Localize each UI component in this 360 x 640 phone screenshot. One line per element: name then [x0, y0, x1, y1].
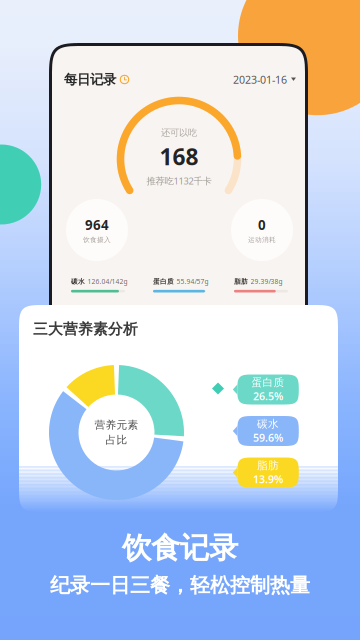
staticText: 碳水 [71, 277, 85, 285]
staticText: 59.6% [253, 430, 283, 445]
staticText: 纪录一日三餐，轻松控制热量 [50, 573, 310, 598]
staticText: 蛋白质 [153, 277, 174, 285]
staticText: 脂肪 [257, 459, 279, 472]
staticText: 蛋白质 [252, 376, 285, 389]
staticText: 55.94/57g [176, 277, 208, 286]
button[interactable]: 2023-01-16 [233, 71, 296, 88]
button[interactable]: 记录说明 [116, 71, 133, 88]
staticText: 推荐吃1132千卡 [146, 175, 211, 187]
staticText: 964 [85, 216, 109, 234]
button[interactable]: 脂肪 [233, 457, 299, 487]
staticText: 饮食记录 [122, 530, 238, 566]
staticText: 营养元素 [94, 418, 138, 431]
staticText: 29.39/38g [250, 277, 282, 286]
staticText: 碳水 [257, 417, 279, 430]
staticText: 脂肪 [234, 277, 248, 285]
button[interactable]: 0 [231, 199, 293, 261]
staticText: 126.04/142g [87, 277, 127, 286]
staticText: 每日记录 [64, 71, 116, 88]
staticText: 饮食摄入 [83, 236, 111, 244]
staticText: 26.5% [253, 389, 283, 403]
staticText: 2023-01-16 [233, 72, 287, 87]
button[interactable]: 碳水 [233, 416, 299, 446]
button[interactable]: 964 [66, 199, 128, 261]
staticText: 13.9% [253, 472, 283, 486]
staticText: 168 [159, 141, 198, 172]
button[interactable]: 蛋白质 [233, 374, 299, 404]
staticText: 占比 [105, 433, 127, 447]
staticText: 还可以吃 [161, 127, 197, 138]
staticText: 0 [258, 216, 266, 234]
staticText: 运动消耗 [248, 236, 276, 244]
staticText: 三大营养素分析 [33, 320, 138, 338]
